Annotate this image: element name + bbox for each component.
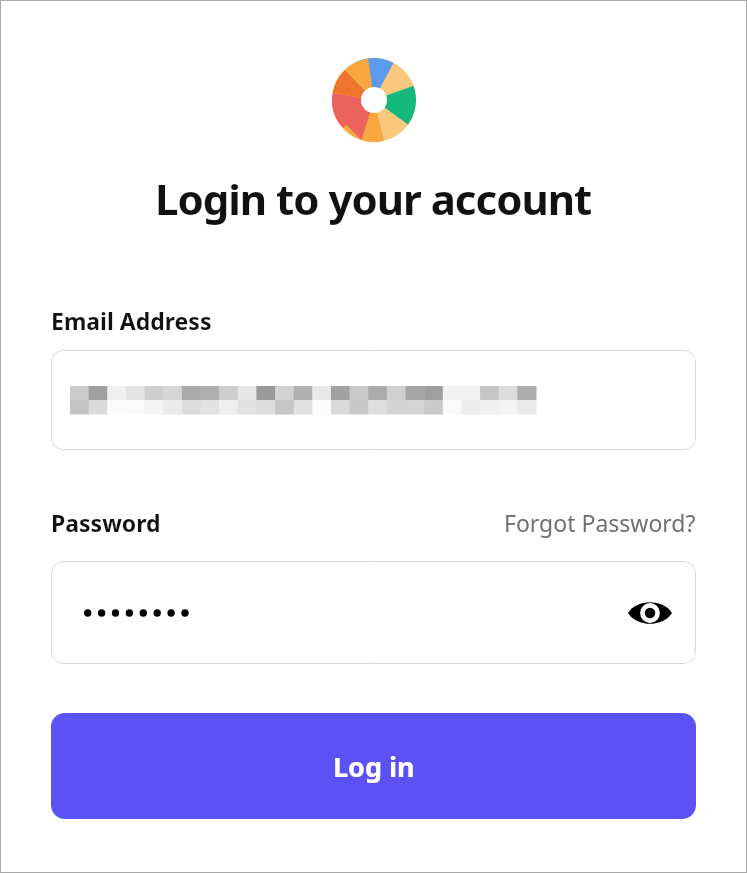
staticText: Login to your account xyxy=(155,170,592,227)
button[interactable]: Show password xyxy=(626,589,674,637)
button[interactable]: Show password xyxy=(51,561,696,664)
staticText: Forgot Password? xyxy=(504,507,696,538)
staticText: Password xyxy=(51,507,161,538)
button[interactable] xyxy=(51,350,696,450)
button[interactable]: Forgot Password? xyxy=(504,507,696,538)
staticText: Log in xyxy=(333,748,415,785)
staticText: Email Address xyxy=(51,305,212,336)
button[interactable]: Log in xyxy=(51,713,696,819)
